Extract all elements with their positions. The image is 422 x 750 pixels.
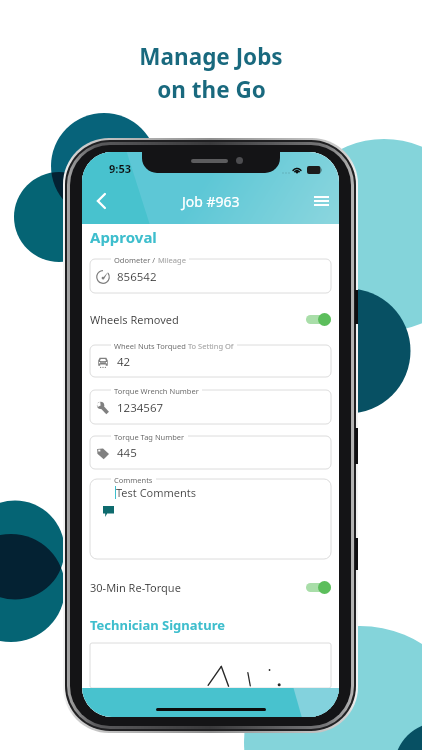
staticText: 1234567 [117, 400, 164, 416]
button[interactable]: Menu [306, 186, 336, 216]
button[interactable]: Torque Tag Number [90, 432, 331, 469]
button[interactable]: Wheels Removed [90, 309, 331, 329]
staticText: on the Go [157, 74, 266, 105]
staticText: Torque Tag Number [114, 432, 185, 442]
staticText: 445 [117, 445, 137, 461]
staticText: Wheels Removed [90, 312, 179, 327]
button[interactable]: Back [86, 186, 116, 216]
button[interactable]: Odometer / [90, 255, 331, 293]
button[interactable]: 30-Min Re-Torque [90, 577, 331, 597]
staticText: Odometer / [114, 255, 156, 265]
button[interactable]: Wheel Nuts Torqued [90, 341, 331, 377]
staticText: Mileage [156, 255, 186, 265]
staticText: Test Comments [116, 485, 197, 500]
staticText: 42 [117, 354, 131, 370]
staticText: Wheel Nuts Torqued [114, 341, 186, 351]
staticText: 30-Min Re-Torque [90, 580, 181, 595]
staticText: Torque Wrench Number [114, 386, 199, 396]
staticText: 9:53 [109, 161, 131, 176]
staticText: Approval [90, 227, 157, 247]
staticText: Job #963 [182, 192, 240, 211]
staticText: Technician Signature [90, 616, 225, 634]
button[interactable]: Torque Wrench Number [90, 386, 331, 424]
staticText: To Setting Of [186, 341, 234, 351]
staticText: 856542 [117, 269, 157, 285]
staticText: Manage Jobs [139, 41, 283, 72]
staticText: Comments [114, 475, 153, 485]
button[interactable]: Comments [90, 475, 331, 559]
